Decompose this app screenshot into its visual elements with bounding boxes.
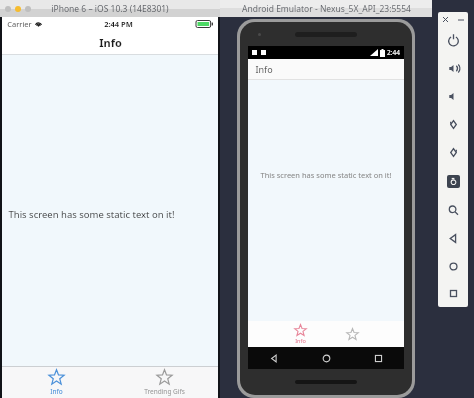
button[interactable]: Trending Gifs bbox=[110, 367, 218, 398]
button[interactable] bbox=[326, 321, 378, 347]
staticText: Info bbox=[99, 35, 122, 50]
staticText: Info bbox=[295, 337, 306, 344]
staticText: Info bbox=[50, 387, 63, 396]
staticText: Android Emulator - Nexus_5X_API_23:5554 bbox=[242, 3, 411, 15]
staticText: This screen has some static text on it! bbox=[260, 170, 392, 180]
button[interactable]: Screenshot bbox=[438, 166, 468, 196]
staticText: Info bbox=[255, 63, 273, 75]
button[interactable]: Volume down bbox=[439, 82, 467, 110]
button[interactable]: Power bbox=[439, 26, 467, 54]
staticText: Carrier bbox=[7, 19, 32, 29]
button[interactable]: Recents bbox=[439, 280, 467, 307]
staticText: Trending Gifs bbox=[144, 387, 185, 396]
button[interactable]: Volume up bbox=[439, 54, 467, 82]
button[interactable]: Minimize bbox=[15, 6, 21, 12]
button[interactable]: Close bbox=[5, 6, 11, 12]
button[interactable]: Home bbox=[439, 252, 467, 280]
staticText: 2:44 PM bbox=[104, 19, 133, 29]
staticText: iPhone 6 – iOS 10.3 (14E8301) bbox=[51, 3, 169, 15]
button[interactable]: Back bbox=[248, 347, 300, 369]
button[interactable]: Rotate right bbox=[439, 138, 467, 166]
staticText: This screen has some static text on it! bbox=[8, 208, 175, 221]
button[interactable]: Info bbox=[274, 321, 326, 347]
button[interactable]: Rotate left bbox=[439, 110, 467, 138]
button[interactable]: Back bbox=[439, 224, 467, 252]
button[interactable]: Recents bbox=[352, 347, 404, 369]
button[interactable]: Zoom bbox=[25, 6, 31, 12]
button[interactable]: Close bbox=[440, 14, 451, 25]
button[interactable]: Home bbox=[300, 347, 352, 369]
button[interactable]: Zoom bbox=[439, 196, 467, 224]
staticText: 2:44 bbox=[387, 48, 400, 57]
button[interactable]: Info bbox=[2, 367, 110, 398]
button[interactable]: Minimize bbox=[455, 14, 466, 25]
